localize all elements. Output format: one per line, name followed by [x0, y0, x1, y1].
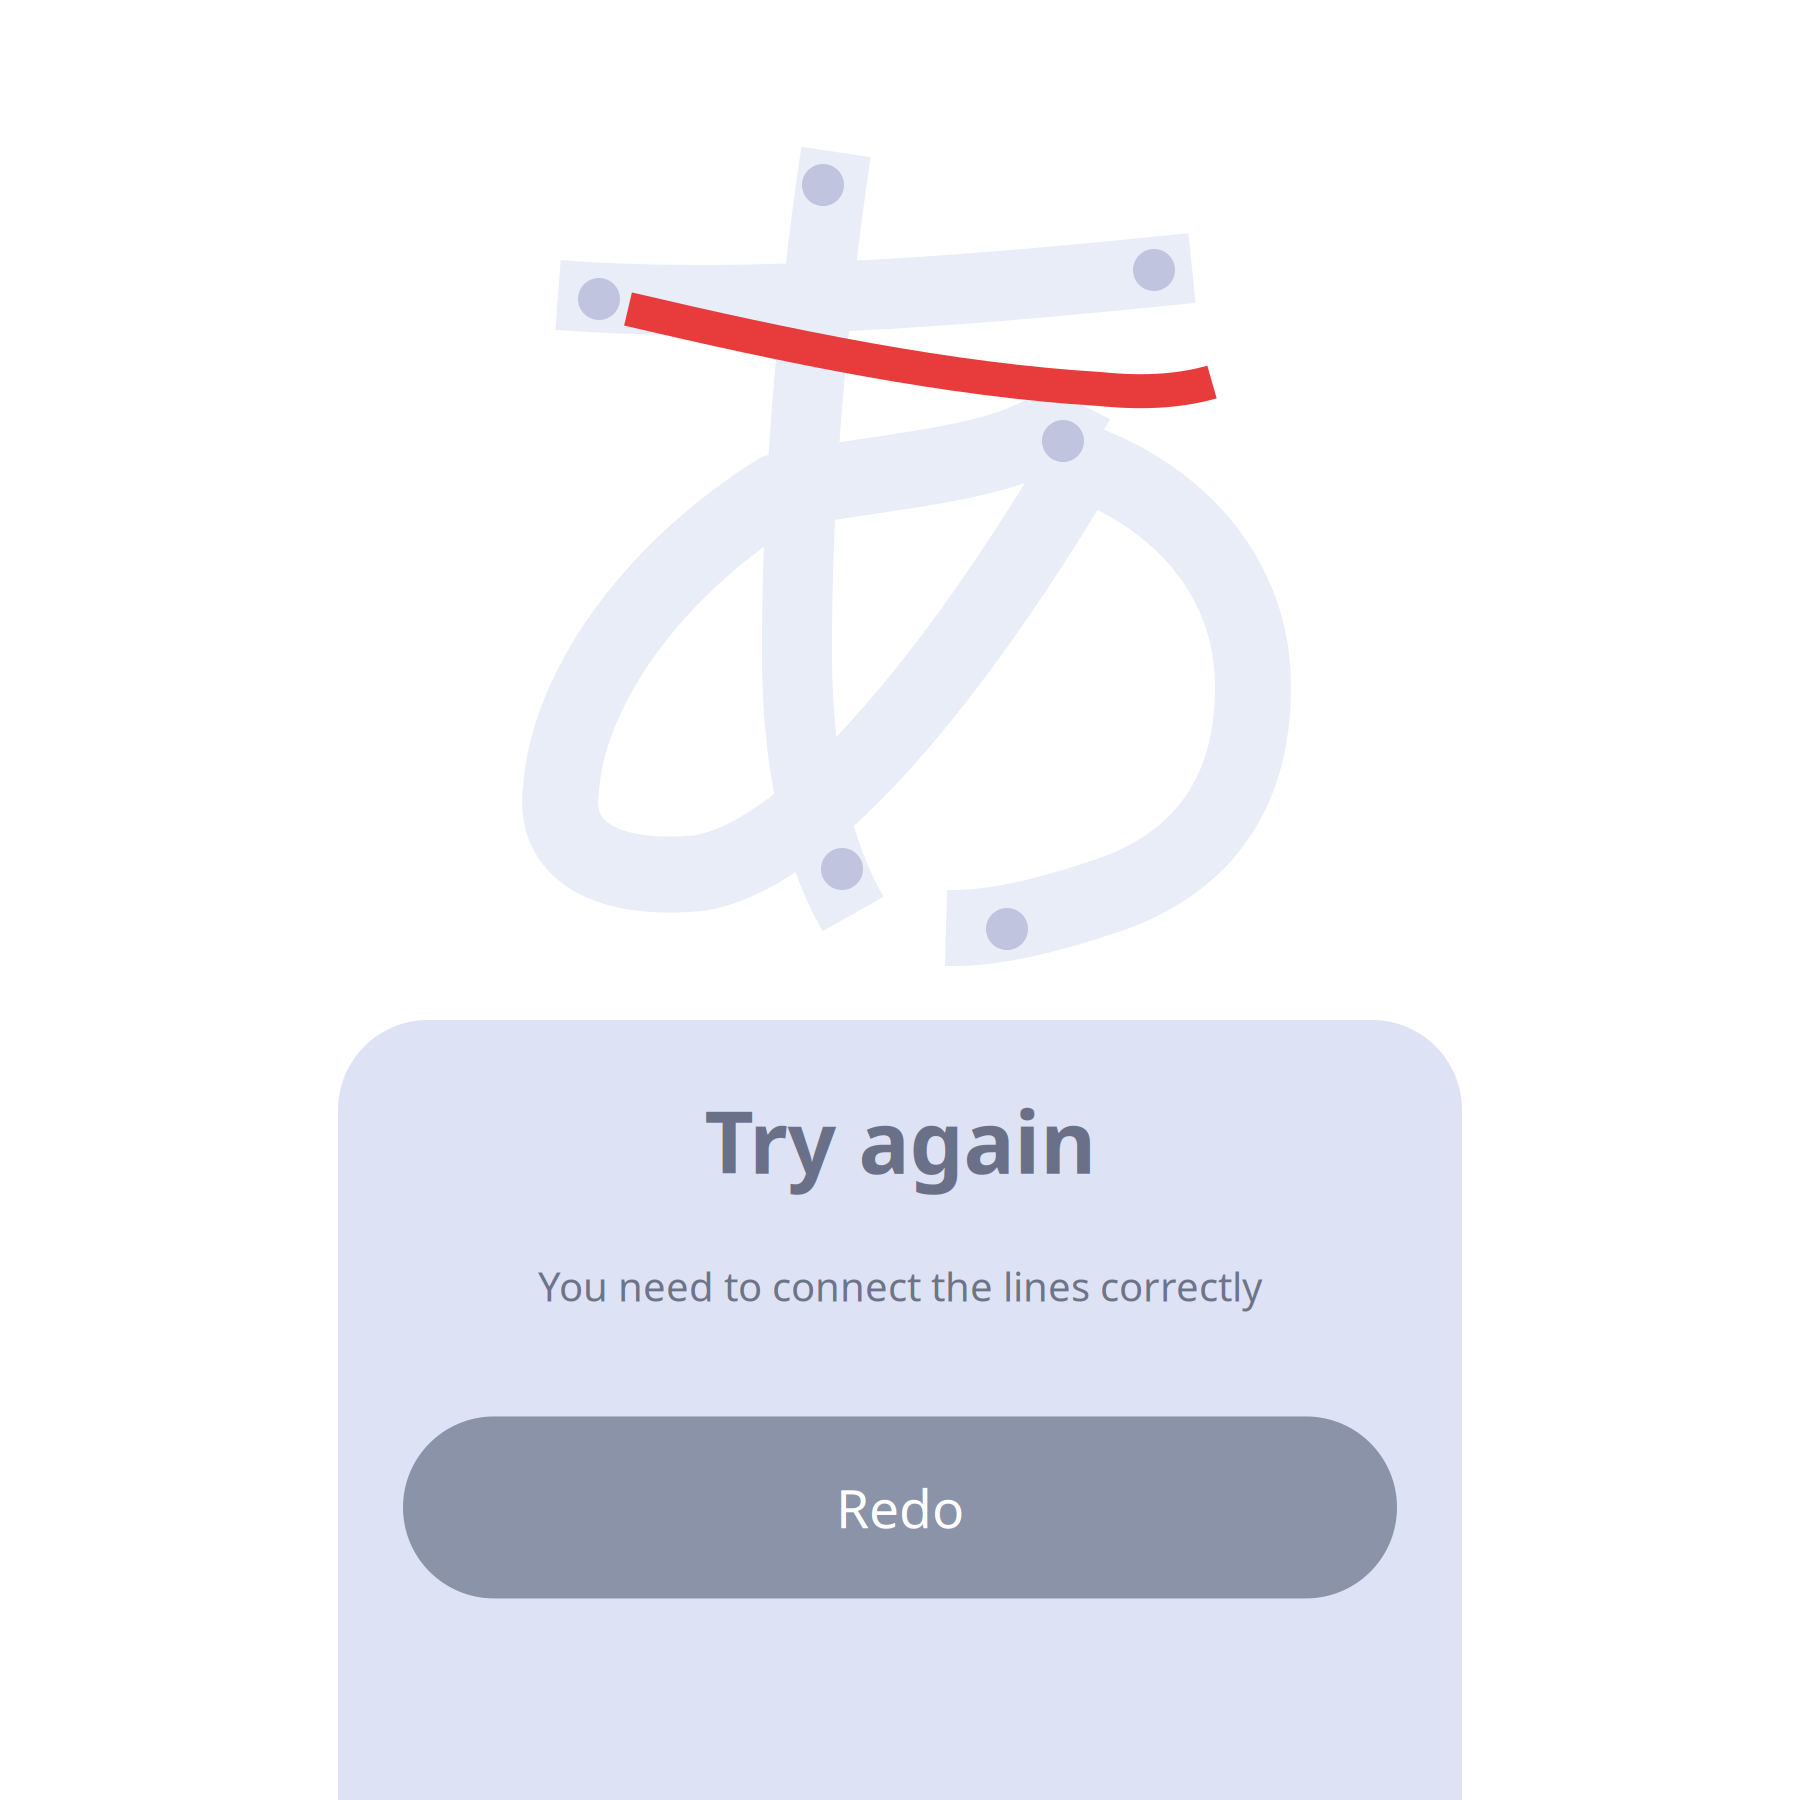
staticText: Try again: [704, 1084, 1095, 1197]
staticText: Redo: [836, 1472, 964, 1543]
staticText: You need to connect the lines correctly: [538, 1259, 1262, 1312]
button[interactable]: Redo: [403, 1416, 1397, 1598]
